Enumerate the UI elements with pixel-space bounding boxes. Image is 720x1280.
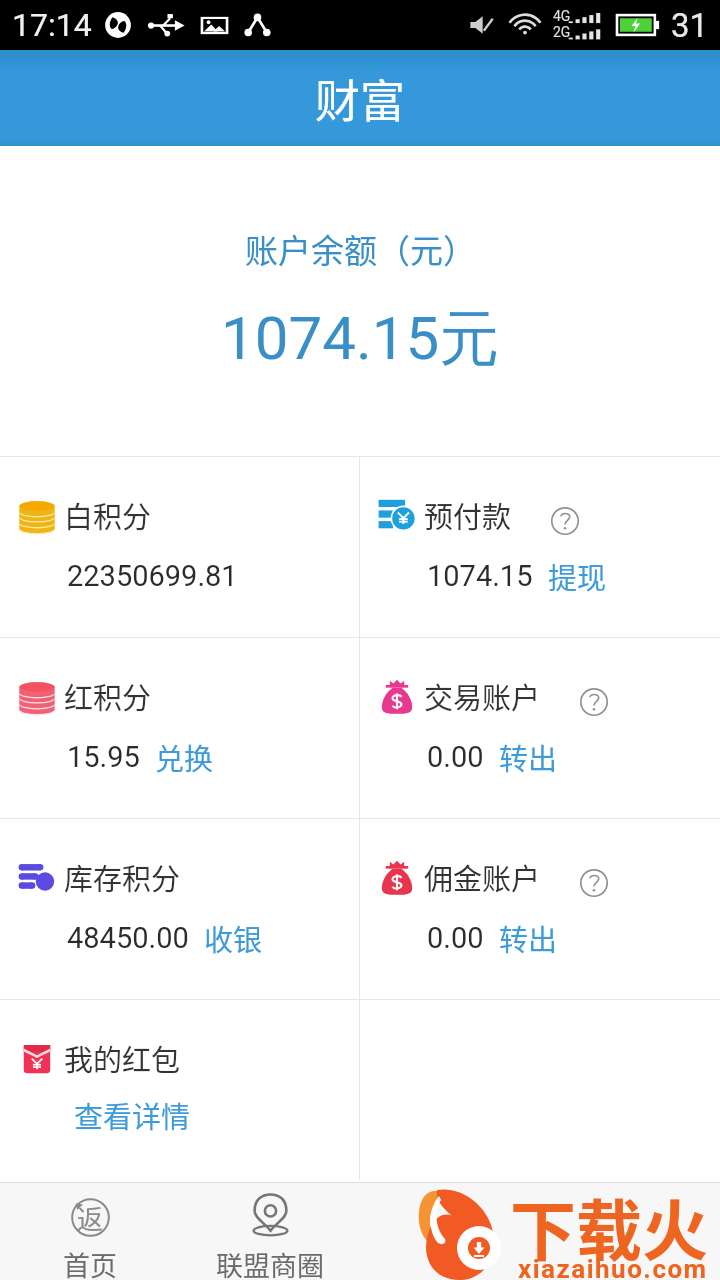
staticText: 佣金账户 — [424, 856, 541, 898]
button[interactable]: 转出 — [499, 736, 558, 778]
staticText: 0.00 — [427, 740, 484, 774]
staticText: 返 — [77, 1199, 104, 1237]
staticText: 收银 — [204, 917, 263, 959]
staticText: 15.95 — [67, 740, 140, 774]
staticText: 1074.15元 — [221, 301, 500, 377]
button[interactable]: 转出 — [499, 917, 558, 959]
button[interactable]: Help — [550, 506, 580, 536]
staticText: 联盟商圈 — [216, 1245, 324, 1280]
button[interactable]: 提现 — [548, 555, 607, 597]
staticText: 下载火 — [510, 1178, 708, 1274]
button[interactable]: 收银 — [204, 917, 263, 959]
staticText: 首页 — [63, 1245, 117, 1280]
staticText: 转出 — [499, 736, 558, 778]
button[interactable] — [360, 1183, 540, 1280]
staticText: 0.00 — [427, 921, 484, 955]
staticText: 17:14 — [12, 6, 92, 44]
button[interactable]: 白积分 — [0, 457, 359, 637]
button[interactable]: 红积分 — [0, 638, 359, 818]
staticText: 预付款 — [424, 494, 512, 536]
staticText: 财富 — [315, 66, 406, 131]
button[interactable]: 库存积分 — [0, 819, 359, 999]
button[interactable]: 预付款 — [360, 457, 720, 637]
staticText: 查看详情 — [74, 1094, 191, 1136]
button[interactable]: Help — [579, 687, 609, 717]
button[interactable]: 我的红包 — [0, 1000, 359, 1180]
staticText: 22350699.81 — [67, 559, 238, 593]
staticText: 账户余额（元） — [245, 225, 476, 273]
staticText: 4G — [553, 8, 571, 24]
button[interactable]: 佣金账户 — [360, 819, 720, 999]
staticText: 我的红包 — [64, 1037, 181, 1079]
staticText: 转出 — [499, 917, 558, 959]
button[interactable]: 联盟商圈 — [180, 1183, 360, 1280]
button[interactable]: 查看详情 — [74, 1094, 191, 1136]
staticText: 兑换 — [155, 736, 214, 778]
button[interactable]: 返 — [0, 1183, 180, 1280]
staticText: 48450.00 — [67, 921, 189, 955]
staticText: 库存积分 — [64, 856, 181, 898]
staticText: 提现 — [548, 555, 607, 597]
staticText: 红积分 — [64, 675, 152, 717]
staticText: 31 — [671, 6, 709, 45]
staticText: 交易账户 — [424, 675, 541, 717]
button[interactable] — [540, 1183, 720, 1280]
button[interactable]: Help — [579, 868, 609, 898]
staticText: 1074.15 — [427, 559, 533, 593]
staticText: xiazaihuo.com — [518, 1254, 708, 1280]
staticText: 2G — [553, 24, 571, 40]
button[interactable]: 兑换 — [155, 736, 214, 778]
button[interactable]: 交易账户 — [360, 638, 720, 818]
staticText: 白积分 — [64, 494, 152, 536]
